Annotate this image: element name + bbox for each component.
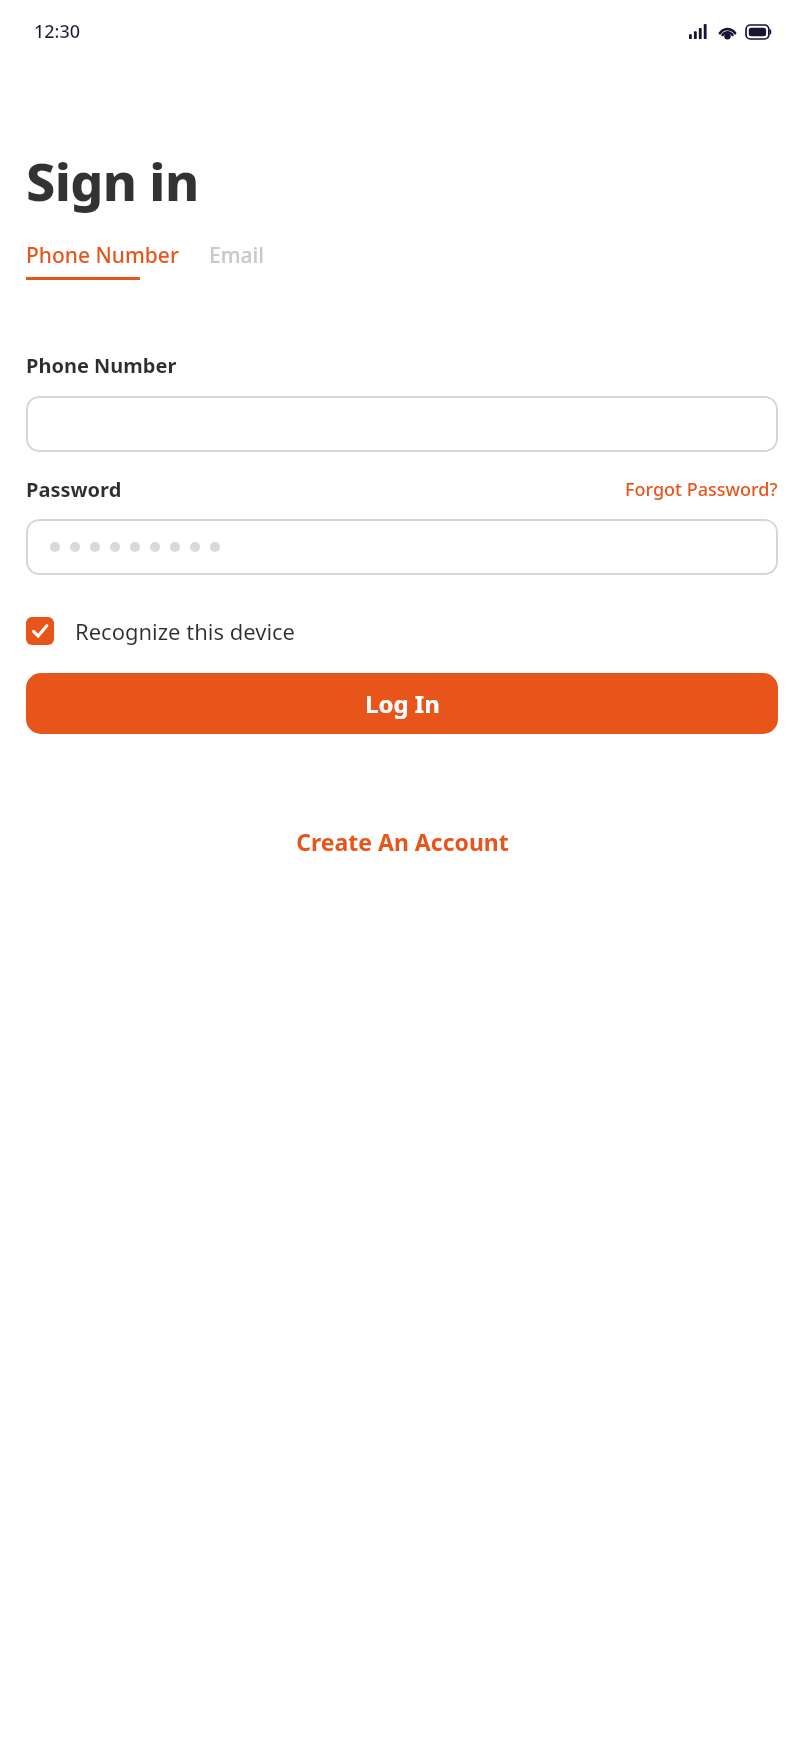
staticText: Create An Account — [296, 826, 509, 857]
button[interactable] — [26, 396, 778, 452]
staticText: Recognize this device — [75, 616, 296, 646]
staticText: Log In — [365, 687, 440, 720]
button[interactable]: Log In — [26, 673, 778, 734]
staticText: Password — [26, 476, 122, 503]
staticText: Phone Number — [26, 241, 179, 270]
button[interactable]: Create An Account — [288, 818, 517, 865]
button[interactable]: Phone Number — [26, 241, 179, 280]
staticText: Forgot Password? — [625, 477, 778, 502]
button[interactable]: Email — [209, 241, 264, 270]
staticText: 12:30 — [34, 19, 81, 44]
staticText: Sign in — [26, 145, 199, 216]
staticText: Phone Number — [26, 352, 177, 379]
button[interactable]: Forgot Password? — [625, 477, 778, 502]
button[interactable]: Recognize this device — [26, 616, 296, 646]
staticText: Email — [209, 241, 264, 270]
button[interactable] — [26, 519, 778, 575]
